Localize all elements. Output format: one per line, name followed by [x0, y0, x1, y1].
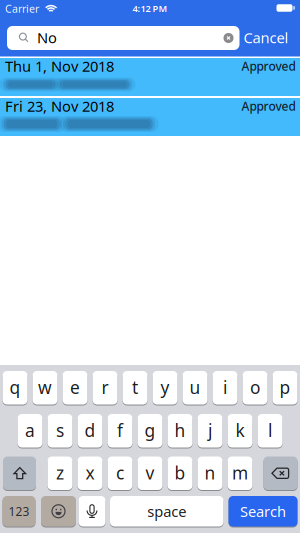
staticText: w: [38, 376, 52, 399]
button[interactable]: x: [77, 456, 102, 490]
staticText: r: [101, 376, 108, 399]
button[interactable]: c: [107, 456, 132, 490]
staticText: p: [279, 376, 290, 399]
button[interactable]: Delete: [263, 456, 297, 490]
button[interactable]: m: [227, 456, 252, 490]
button[interactable]: Dictation: [78, 496, 105, 526]
staticText: Carrier: [5, 1, 39, 16]
staticText: Fri 23, Nov 2018: [5, 96, 114, 116]
staticText: m: [232, 461, 248, 484]
staticText: s: [56, 419, 64, 442]
button[interactable]: Search: [228, 496, 297, 526]
staticText: Cancel: [243, 28, 288, 47]
staticText: v: [145, 461, 154, 484]
staticText: d: [84, 419, 95, 442]
staticText: e: [70, 376, 80, 399]
staticText: u: [189, 376, 200, 399]
button[interactable]: j: [197, 414, 222, 447]
button[interactable]: Cancel: [243, 28, 288, 47]
staticText: f: [117, 419, 123, 442]
staticText: x: [85, 461, 94, 484]
button[interactable]: p: [272, 371, 297, 404]
staticText: Approved: [241, 98, 295, 114]
button[interactable]: t: [122, 371, 147, 404]
button[interactable]: Thu 1, Nov 2018: [0, 58, 300, 96]
button[interactable]: s: [47, 414, 72, 447]
button[interactable]: Clear text: [223, 33, 233, 43]
staticText: z: [56, 461, 64, 484]
button[interactable]: Fri 23, Nov 2018: [0, 98, 300, 136]
staticText: q: [9, 376, 20, 399]
staticText: b: [174, 461, 185, 484]
button[interactable]: b: [167, 456, 192, 490]
button[interactable]: w: [32, 371, 57, 404]
button[interactable]: i: [212, 371, 237, 404]
button[interactable]: q: [2, 371, 27, 404]
button[interactable]: l: [257, 414, 282, 447]
staticText: Search: [240, 501, 286, 521]
button[interactable]: n: [197, 456, 222, 490]
button[interactable]: Emoji: [41, 496, 76, 526]
button[interactable]: k: [227, 414, 252, 447]
button[interactable]: d: [77, 414, 102, 447]
button[interactable]: y: [152, 371, 177, 404]
staticText: y: [160, 376, 169, 399]
button[interactable]: f: [107, 414, 132, 447]
staticText: No: [37, 28, 57, 47]
staticText: space: [147, 501, 186, 521]
staticText: 123: [8, 503, 29, 519]
button[interactable]: Numbers: [2, 496, 35, 526]
staticText: Thu 1, Nov 2018: [5, 56, 114, 76]
staticText: Approved: [241, 58, 295, 74]
staticText: l: [268, 419, 272, 442]
staticText: k: [235, 419, 244, 442]
staticText: g: [144, 419, 155, 442]
button[interactable]: space: [110, 496, 223, 526]
button[interactable]: o: [242, 371, 267, 404]
staticText: i: [223, 376, 227, 399]
staticText: t: [132, 376, 138, 399]
button[interactable]: e: [62, 371, 87, 404]
button[interactable]: Shift: [3, 456, 36, 490]
button[interactable]: v: [137, 456, 162, 490]
button[interactable]: r: [92, 371, 117, 404]
staticText: o: [250, 376, 260, 399]
button[interactable]: u: [182, 371, 207, 404]
staticText: j: [208, 419, 212, 442]
staticText: 4:12 PM: [132, 2, 167, 15]
button[interactable]: g: [137, 414, 162, 447]
button[interactable]: No: [7, 26, 239, 50]
button[interactable]: h: [167, 414, 192, 447]
button[interactable]: a: [17, 414, 42, 447]
staticText: a: [25, 419, 35, 442]
staticText: n: [204, 461, 215, 484]
staticText: h: [174, 419, 185, 442]
staticText: c: [116, 461, 124, 484]
button[interactable]: z: [47, 456, 72, 490]
